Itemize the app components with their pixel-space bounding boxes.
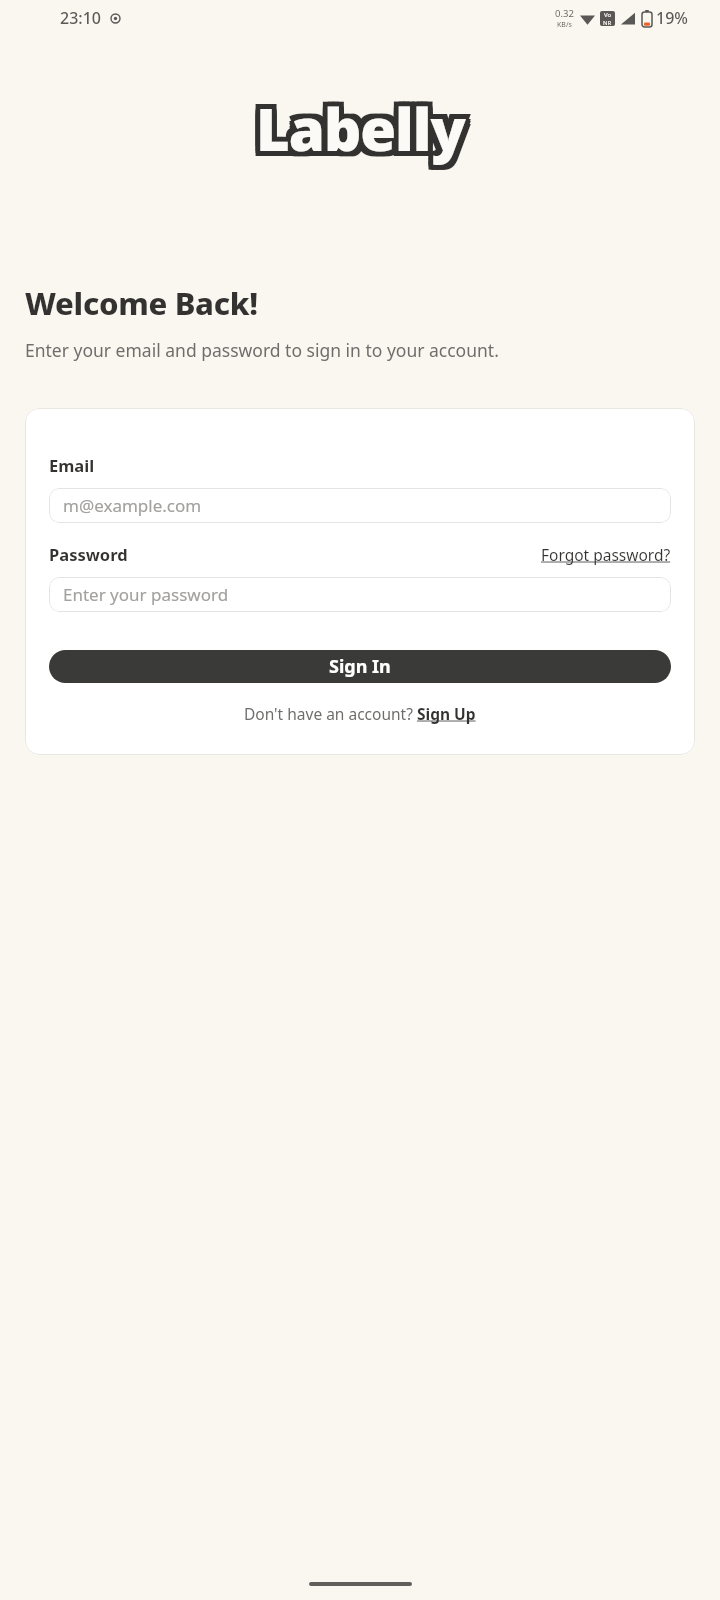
staticText: Don't have an account?: [244, 703, 417, 724]
staticText: Labelly: [261, 89, 470, 168]
staticText: m@example.com: [63, 494, 202, 517]
button[interactable]: Sign Up: [417, 703, 476, 724]
staticText: Labelly: [251, 91, 460, 170]
staticText: Vo: [604, 11, 612, 19]
button[interactable]: Sign In: [49, 650, 671, 683]
staticText: Labelly: [251, 84, 460, 163]
staticText: Labelly: [261, 94, 470, 173]
staticText: Enter your email and password to sign in…: [25, 338, 499, 362]
staticText: Labelly: [251, 89, 460, 168]
staticText: Labelly: [261, 91, 470, 170]
staticText: Labelly: [256, 89, 465, 168]
staticText: 19%: [656, 7, 688, 29]
staticText: 0.32: [555, 7, 574, 20]
staticText: NR: [603, 19, 612, 26]
staticText: Sign Up: [417, 703, 476, 724]
staticText: Labelly: [256, 94, 465, 173]
staticText: Labelly: [251, 94, 460, 173]
staticText: Email: [49, 454, 95, 476]
staticText: Labelly: [256, 84, 465, 163]
staticText: Enter your password: [63, 583, 229, 606]
staticText: Forgot password?: [541, 544, 671, 565]
staticText: 23:10: [60, 7, 101, 29]
staticText: Welcome Back!: [25, 282, 258, 324]
button[interactable]: Forgot password?: [541, 544, 671, 565]
button[interactable]: m@example.com: [49, 488, 671, 523]
staticText: Labelly: [261, 84, 470, 163]
staticText: Password: [49, 543, 128, 565]
button[interactable]: Enter your password: [49, 577, 671, 612]
staticText: Sign In: [329, 654, 391, 679]
staticText: KB/s: [557, 20, 572, 30]
